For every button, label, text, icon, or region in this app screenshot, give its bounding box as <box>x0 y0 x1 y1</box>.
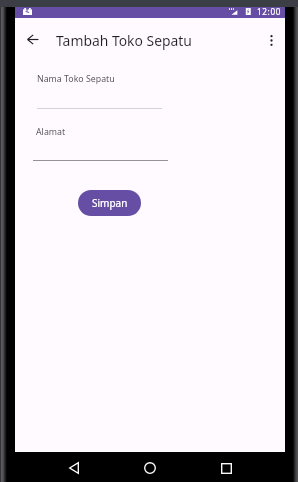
button[interactable]: Back <box>20 27 46 53</box>
button[interactable]: Home <box>137 455 163 481</box>
button[interactable]: Recents <box>213 455 239 481</box>
staticText: Alamat <box>36 126 66 138</box>
staticText: Nama Toko Sepatu <box>37 73 115 85</box>
staticText: Tambah Toko Sepatu <box>56 31 192 50</box>
staticText: Simpan <box>92 196 128 210</box>
button[interactable]: Simpan <box>78 190 141 216</box>
button[interactable]: More options <box>258 27 284 53</box>
staticText: 12:00 <box>257 6 282 17</box>
button[interactable]: Back <box>61 455 87 481</box>
